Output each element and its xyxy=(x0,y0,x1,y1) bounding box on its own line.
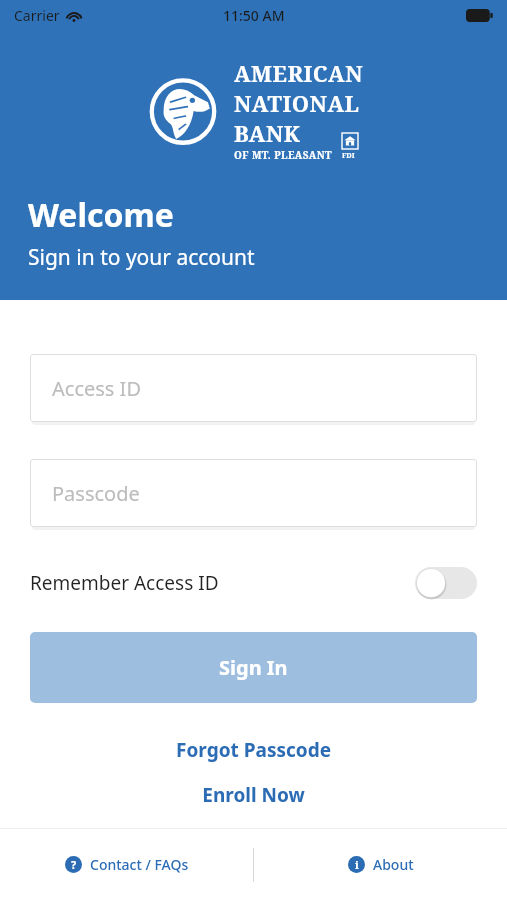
other: Contact and FAQs xyxy=(65,856,82,873)
button[interactable]: Forgot Passcode xyxy=(0,732,507,768)
button[interactable]: Sign In xyxy=(30,632,477,703)
staticText: NATIONAL xyxy=(234,88,360,118)
button[interactable]: Access ID xyxy=(30,354,477,422)
staticText: OF MT. PLEASANT xyxy=(234,148,332,162)
staticText: i xyxy=(355,857,359,872)
button[interactable]: Remember Access ID toggle xyxy=(415,567,477,599)
staticText: Remember Access ID xyxy=(30,570,219,596)
button[interactable]: Passcode xyxy=(30,459,477,527)
button[interactable]: Remember Access ID xyxy=(0,559,507,607)
staticText: Contact / FAQs xyxy=(90,855,189,874)
staticText: BANK xyxy=(234,118,301,148)
button[interactable]: About xyxy=(254,829,507,900)
staticText: Welcome xyxy=(28,193,174,237)
staticText: Sign in to your account xyxy=(28,243,255,272)
staticText: 11:50 AM xyxy=(223,6,285,25)
button[interactable]: Contact and FAQs xyxy=(0,829,253,900)
button[interactable]: Enroll Now xyxy=(0,777,507,813)
staticText: Carrier xyxy=(14,6,60,25)
staticText: AMERICAN xyxy=(234,58,363,88)
staticText: ? xyxy=(71,857,77,872)
staticText: Access ID xyxy=(52,375,141,402)
staticText: About xyxy=(373,855,414,874)
staticText: FDIC xyxy=(342,151,358,160)
staticText: Sign In xyxy=(219,654,288,681)
staticText: Passcode xyxy=(52,480,140,507)
other: About xyxy=(348,856,365,873)
staticText: Enroll Now xyxy=(202,782,305,808)
staticText: Forgot Passcode xyxy=(176,737,331,763)
